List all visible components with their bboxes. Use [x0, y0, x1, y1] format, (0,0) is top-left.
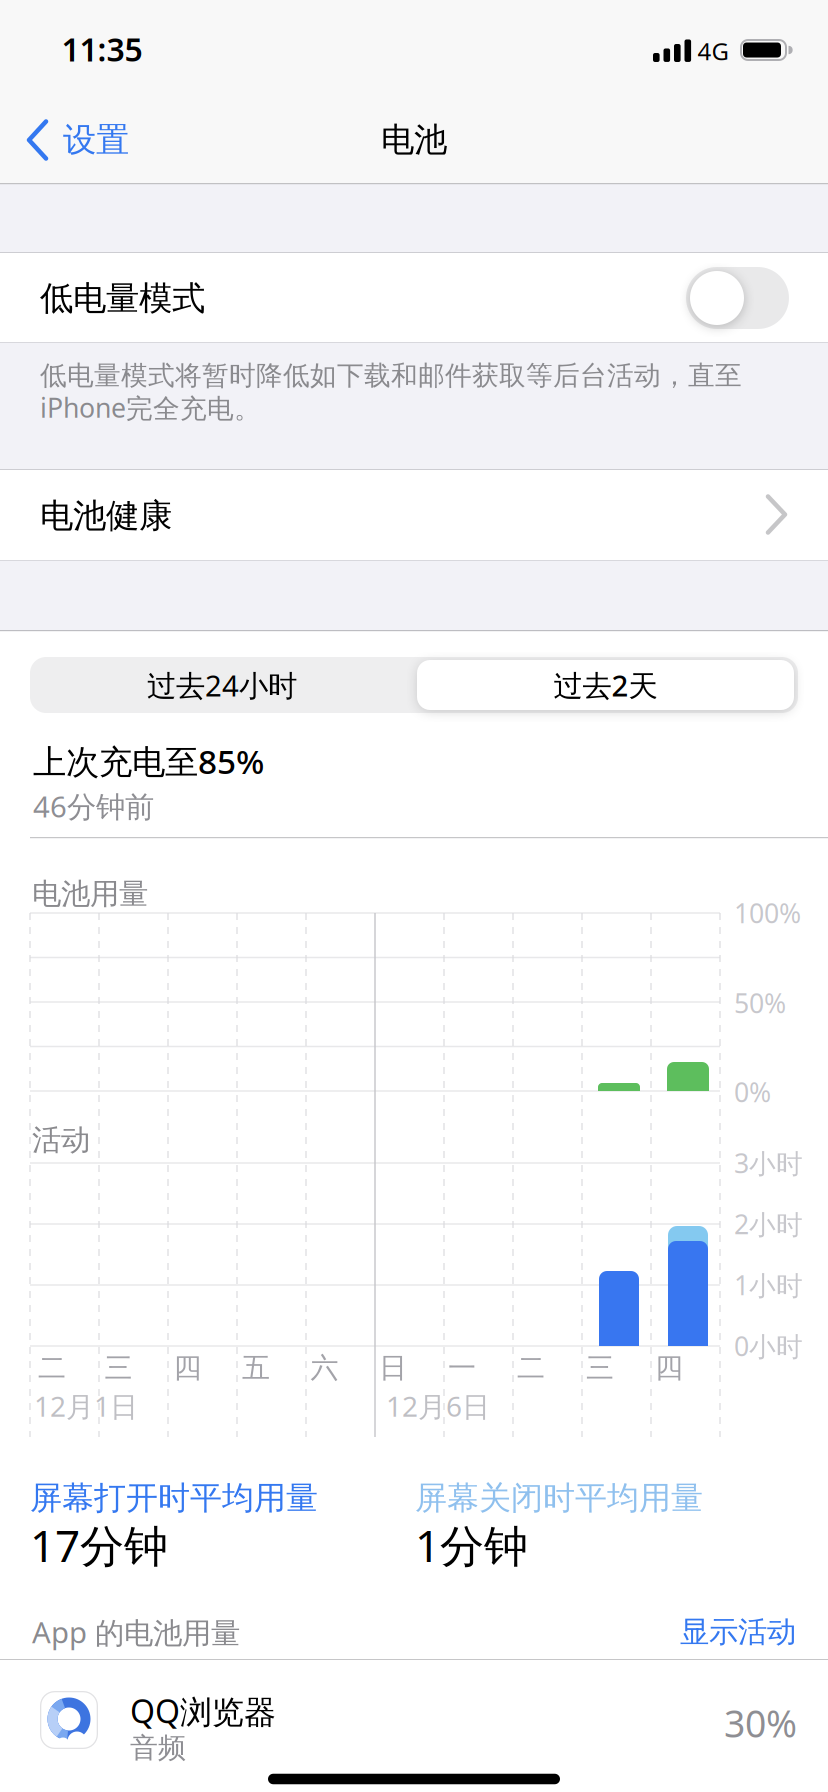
button[interactable]: 设置 — [27, 110, 129, 170]
staticText: 4G — [697, 35, 728, 67]
staticText: 0小时 — [734, 1328, 803, 1364]
staticText: 11:35 — [61, 28, 142, 70]
staticText: 100% — [734, 895, 801, 931]
button[interactable]: 显示活动 — [680, 1614, 796, 1650]
staticText: 过去24小时 — [147, 665, 297, 704]
staticText: 0% — [734, 1074, 771, 1110]
staticText: 50% — [734, 985, 786, 1021]
staticText: 显示活动 — [680, 1614, 796, 1650]
staticText: 五 — [242, 1351, 270, 1385]
staticText: 屏幕打开时平均用量 — [30, 1478, 318, 1518]
staticText: 三 — [104, 1351, 132, 1385]
staticText: 低电量模式 — [40, 278, 205, 319]
staticText: 30% — [724, 1698, 797, 1748]
button[interactable]: 电池健康 — [0, 470, 828, 560]
button[interactable]: 过去24小时 — [30, 657, 414, 713]
staticText: 电池 — [381, 119, 447, 160]
staticText: QQ浏览器 — [130, 1690, 276, 1732]
staticText: 四 — [173, 1351, 201, 1385]
staticText: 46分钟前 — [33, 786, 154, 825]
staticText: 日 — [379, 1351, 407, 1385]
staticText: 一 — [448, 1351, 476, 1385]
staticText: 二 — [517, 1351, 545, 1385]
staticText: 12月1日 — [34, 1387, 138, 1425]
staticText: 17分钟 — [30, 1516, 168, 1574]
staticText: 二 — [38, 1351, 66, 1385]
staticText: 音频 — [130, 1731, 186, 1765]
button[interactable]: QQ浏览器 — [0, 1660, 828, 1792]
staticText: 屏幕关闭时平均用量 — [415, 1478, 703, 1518]
button[interactable]: 低电量模式 — [0, 253, 828, 342]
staticText: 低电量模式将暂时降低如下载和邮件获取等后台活动，直至 — [40, 359, 742, 392]
staticText: 四 — [655, 1351, 683, 1385]
staticText: 电池用量 — [32, 876, 148, 912]
staticText: 2小时 — [734, 1206, 803, 1242]
staticText: 过去2天 — [553, 665, 657, 704]
staticText: 设置 — [63, 119, 129, 160]
staticText: 3小时 — [734, 1145, 803, 1181]
staticText: 1分钟 — [415, 1516, 528, 1574]
staticText: 上次充电至85% — [33, 739, 264, 783]
staticText: 12月6日 — [386, 1387, 490, 1425]
staticText: 电池健康 — [40, 495, 172, 536]
staticText: 六 — [310, 1351, 338, 1385]
staticText: App 的电池用量 — [32, 1612, 240, 1651]
staticText: 1小时 — [734, 1267, 803, 1303]
button[interactable]: 过去2天 — [415, 657, 795, 713]
staticText: 活动 — [32, 1122, 90, 1158]
staticText: 三 — [586, 1351, 614, 1385]
staticText: iPhone完全充电。 — [40, 390, 261, 425]
